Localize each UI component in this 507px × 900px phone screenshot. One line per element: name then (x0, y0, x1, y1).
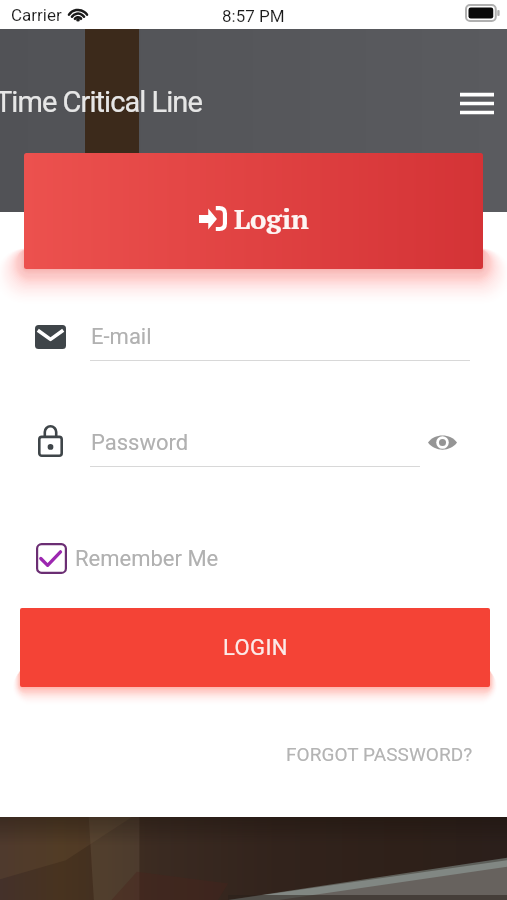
staticText: LOGIN (223, 635, 288, 661)
staticText: Remember Me (75, 546, 219, 572)
button[interactable]: FORGOT PASSWORD? (286, 743, 473, 765)
staticText: E-mail (91, 324, 152, 350)
staticText: FORGOT PASSWORD? (286, 743, 473, 765)
button[interactable]: Show password (424, 424, 460, 460)
staticText: Time Critical Line (0, 85, 202, 119)
button[interactable]: LOGIN (20, 608, 490, 687)
staticText: 8:57 PM (222, 6, 285, 26)
button[interactable]: Remember Me (36, 543, 219, 574)
staticText: Password (91, 430, 189, 456)
staticText: Carrier (11, 5, 62, 25)
staticText: Login (234, 200, 309, 236)
button[interactable]: Login (24, 153, 483, 269)
button[interactable]: Menu (449, 76, 504, 131)
